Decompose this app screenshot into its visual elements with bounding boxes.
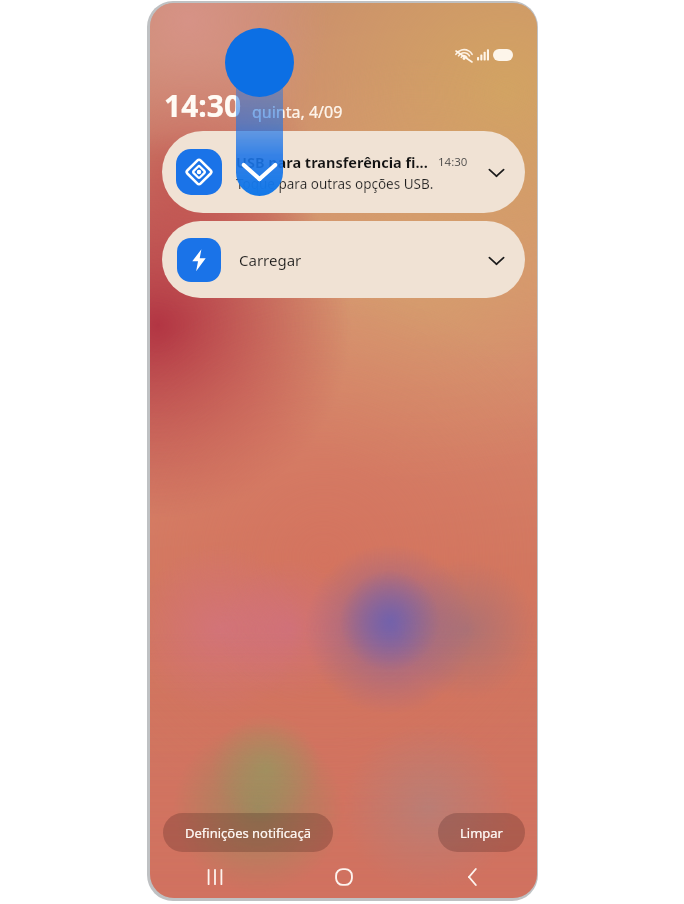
staticText: 14:30 [164, 85, 242, 126]
staticText: Carregar [239, 250, 302, 270]
button[interactable]: Voltar [408, 860, 537, 894]
staticText: Limpar [460, 824, 503, 842]
button[interactable]: Expandir [479, 243, 513, 277]
staticText: Toque para outras opções USB. [236, 175, 434, 193]
button[interactable]: Limpar [438, 813, 525, 852]
staticText: quinta, 4/09 [252, 101, 343, 123]
staticText: 14:30 [438, 154, 468, 170]
button[interactable]: Definições notificaçã [163, 813, 333, 852]
staticText: Definições notificaçã [185, 824, 311, 842]
staticText: USB para transferência fi... [236, 152, 428, 172]
button[interactable]: Carregar [162, 221, 525, 298]
button[interactable]: Início [279, 860, 408, 894]
button[interactable]: Expandir [479, 155, 513, 189]
button[interactable]: Recentes [150, 860, 279, 894]
button[interactable]: USB para transferência fi... [162, 131, 525, 213]
